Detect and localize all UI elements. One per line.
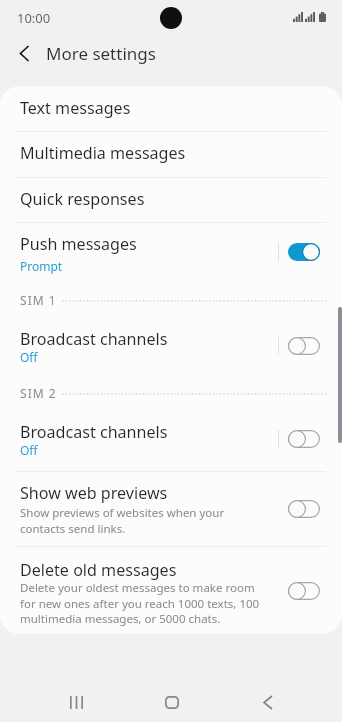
button[interactable]: Broadcast channels (0, 315, 342, 378)
button[interactable]: Back (8, 37, 41, 70)
staticText: Broadcast channels (20, 421, 168, 443)
staticText: Off (20, 349, 38, 365)
staticText: Delete old messages (20, 559, 177, 581)
staticText: Prompt (20, 258, 63, 274)
staticText: Show previews of websites when your cont… (20, 505, 225, 536)
staticText: Delete your oldest messages to make room… (20, 580, 260, 626)
button[interactable]: Quick responses (0, 177, 342, 223)
button[interactable]: Broadcast channels (0, 408, 342, 471)
button[interactable]: Delete old messages (0, 546, 342, 634)
staticText: Broadcast channels (20, 328, 168, 350)
staticText: Text messages (20, 97, 131, 119)
staticText: Multimedia messages (20, 142, 186, 164)
staticText: Show web previews (20, 482, 168, 504)
staticText: SIM 2 (20, 385, 57, 401)
button[interactable]: Home (148, 679, 195, 722)
staticText: More settings (46, 42, 156, 65)
button[interactable]: Multimedia messages (0, 131, 342, 177)
staticText: 10:00 (17, 9, 51, 27)
button[interactable]: Recents (53, 679, 100, 722)
button[interactable]: Show web previews (0, 471, 342, 546)
staticText: Quick responses (20, 188, 145, 210)
staticText: Push messages (20, 233, 137, 255)
staticText: Off (20, 442, 38, 458)
staticText: SIM 1 (20, 292, 57, 308)
button[interactable]: Back (244, 679, 291, 722)
button[interactable]: Push messages (0, 222, 342, 285)
button[interactable]: Text messages (0, 86, 342, 131)
